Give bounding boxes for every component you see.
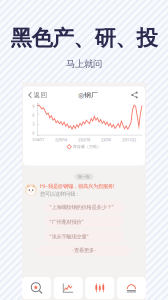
button[interactable]: 换一批 — [74, 173, 93, 180]
staticText: 马上就问 — [66, 58, 102, 70]
staticText: “广州蓖材报价” — [49, 218, 83, 225]
staticText: “张从宇酸现交量” — [49, 233, 88, 240]
staticText: 3 — [32, 121, 34, 127]
staticText: “上海螺纹钢的价格是多少？” — [49, 203, 113, 211]
button[interactable]: 返回 — [28, 90, 48, 99]
staticText: 23/7/6 — [101, 137, 111, 142]
staticText: 23/2/18 — [78, 137, 90, 142]
button[interactable]: · 查看更多 · — [36, 245, 131, 255]
staticText: 0 — [32, 130, 34, 135]
staticText: ◎钢厂 — [78, 91, 98, 99]
staticText: 黑色产、研、投 — [10, 25, 157, 51]
staticText: 库存量（万吨） — [73, 144, 101, 149]
staticText: 22/9/14 — [55, 137, 67, 142]
staticText: 6 — [32, 112, 34, 118]
staticText: 您可以这样问我： — [40, 191, 80, 197]
staticText: Hi~我是@钢镚，很高兴为您服务! — [40, 182, 114, 189]
button[interactable]: 行情 — [85, 277, 114, 299]
button[interactable]: 走势 — [54, 277, 83, 299]
staticText: 22/4/27 — [32, 137, 44, 142]
button[interactable]: “上海螺纹钢的价格是多少？” — [44, 201, 123, 213]
button[interactable]: 搜索 — [22, 277, 51, 299]
button[interactable]: 资讯 — [117, 277, 146, 299]
staticText: 返回 — [34, 91, 48, 99]
staticText: 9 — [32, 103, 34, 109]
button[interactable]: “张从宇酸现交量” — [44, 230, 123, 243]
button[interactable]: “广州蓖材报价” — [44, 215, 123, 228]
staticText: 换一批 — [78, 174, 90, 179]
staticText: · 查看更多 · — [72, 247, 96, 254]
button[interactable]: 分享 — [129, 90, 140, 99]
staticText: 23/11/22 — [122, 137, 136, 142]
